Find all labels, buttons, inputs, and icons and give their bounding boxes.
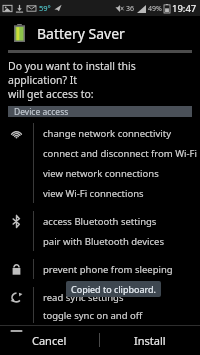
staticText: prevent phone from sleeping [43,263,173,276]
button[interactable]: Wi-Fi [0,117,200,205]
staticText: 36 [126,4,135,14]
other: Bluetooth [10,215,23,228]
staticText: Copied to clipboard. [71,283,156,295]
other: Wi-Fi [10,127,23,140]
staticText: pair with Bluetooth devices [43,235,165,248]
staticText: 49% [148,4,162,14]
staticText: view Wi-Fi connections [43,187,144,200]
other: Sync [10,291,23,304]
staticText: read sync settings [43,291,124,304]
other: Device lock [10,263,23,276]
staticText: change network connectivity [43,127,172,140]
staticText: Battery Saver [37,24,125,43]
button[interactable]: Cancel [0,325,99,355]
button[interactable]: Bluetooth [0,205,200,253]
button[interactable]: Sync [0,281,200,325]
button[interactable]: Device lock [0,253,200,281]
staticText: 19:47 [172,2,197,15]
staticText: Device access [14,106,69,117]
staticText: Install [134,333,166,348]
staticText: access Bluetooth settings [43,215,157,228]
staticText: view network connections [43,167,159,180]
staticText: Do you want to install this application?… [8,59,194,101]
staticText: toggle sync on and off [43,309,143,322]
button[interactable]: Install [100,325,200,355]
staticText: connect and disconnect from Wi-Fi [43,147,197,160]
staticText: 59° [39,3,51,13]
staticText: Cancel [32,333,67,348]
